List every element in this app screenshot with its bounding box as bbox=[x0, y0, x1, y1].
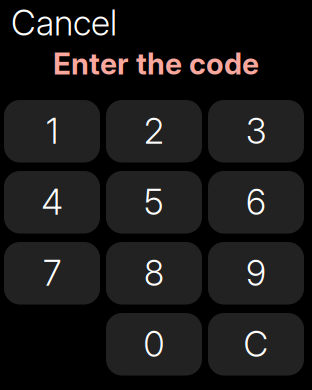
staticText: 3 bbox=[246, 110, 266, 152]
staticText: 1 bbox=[46, 110, 58, 152]
button[interactable]: 1 bbox=[4, 100, 100, 162]
staticText: 4 bbox=[41, 181, 62, 223]
staticText: 6 bbox=[246, 181, 266, 223]
button[interactable]: 2 bbox=[106, 100, 202, 162]
button[interactable]: 0 bbox=[106, 313, 202, 375]
button[interactable]: C bbox=[208, 313, 304, 375]
staticText: 5 bbox=[144, 181, 164, 223]
button[interactable]: 6 bbox=[208, 171, 304, 233]
button[interactable]: 4 bbox=[4, 171, 100, 233]
button[interactable]: 3 bbox=[208, 100, 304, 162]
button[interactable]: 5 bbox=[106, 171, 202, 233]
button[interactable]: 7 bbox=[4, 242, 100, 304]
staticText: 8 bbox=[144, 252, 164, 294]
staticText: Cancel bbox=[11, 2, 117, 44]
staticText: C bbox=[243, 323, 268, 365]
button[interactable]: Cancel bbox=[0, 0, 117, 44]
staticText: 0 bbox=[143, 323, 164, 365]
staticText: Enter the code bbox=[53, 46, 259, 81]
button[interactable]: 8 bbox=[106, 242, 202, 304]
staticText: 7 bbox=[43, 252, 61, 294]
button[interactable]: 9 bbox=[208, 242, 304, 304]
staticText: 9 bbox=[246, 252, 266, 294]
staticText: 2 bbox=[144, 110, 164, 152]
